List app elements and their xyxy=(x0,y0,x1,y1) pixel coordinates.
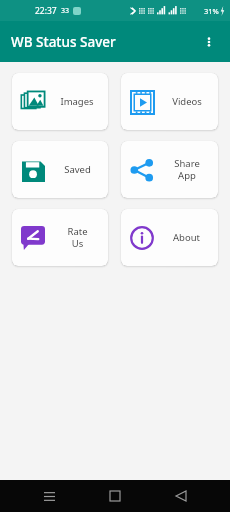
button[interactable]: More options xyxy=(194,27,224,57)
button[interactable]: Rate Us xyxy=(12,209,108,266)
button[interactable]: Videos xyxy=(121,73,218,130)
staticText: About xyxy=(173,231,200,244)
staticText: Rate Us xyxy=(67,225,88,250)
staticText: WB Status Saver xyxy=(11,33,116,51)
button[interactable]: Images xyxy=(12,73,108,130)
button[interactable]: Back xyxy=(164,480,198,512)
staticText: Share App xyxy=(174,157,200,182)
staticText: 31% xyxy=(204,6,219,16)
staticText: Images xyxy=(60,95,94,108)
button[interactable]: Home xyxy=(98,480,132,512)
staticText: 22:37 xyxy=(35,5,57,17)
button[interactable]: About xyxy=(121,209,218,266)
button[interactable]: Saved xyxy=(12,141,108,198)
staticText: Saved xyxy=(64,163,91,176)
button[interactable]: Recents xyxy=(32,480,66,512)
button[interactable]: Share App xyxy=(121,141,218,198)
staticText: Videos xyxy=(172,95,202,108)
staticText: 33 xyxy=(61,6,70,16)
